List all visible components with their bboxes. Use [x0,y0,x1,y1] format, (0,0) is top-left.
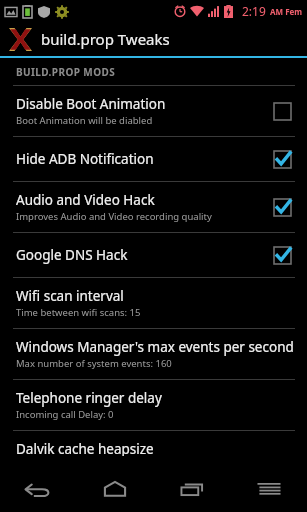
staticText: AM Fem [270,6,303,17]
staticText: Incoming call Delay: 0 [16,408,114,421]
staticText: Windows Manager's max events per second [16,338,294,356]
button[interactable]: Recent apps [153,465,230,512]
staticText: build.prop Tweaks [41,29,170,49]
button[interactable]: Checked [269,242,295,268]
button[interactable]: Hide ADB Notification [0,137,307,181]
staticText: Boot Animation will be diabled [16,114,153,127]
button[interactable]: Menu [230,465,307,512]
staticText: Hide ADB Notification [16,150,154,168]
staticText: Improves Audio and Video recording quali… [16,210,212,223]
button[interactable]: Checked [269,194,295,220]
staticText: Dalvik cache heapsize [16,440,154,456]
button[interactable]: Unchecked [269,98,295,124]
button[interactable]: Disable Boot Animation [0,86,307,136]
button[interactable]: Back [0,465,76,512]
staticText: Telephone ringer delay [16,389,162,407]
staticText: BUILD.PROP MODS [16,65,116,79]
staticText: Google DNS Hack [16,246,128,264]
button[interactable]: Home [76,465,153,512]
button[interactable]: Dalvik cache heapsize [0,431,307,465]
staticText: Disable Boot Animation [16,95,166,113]
button[interactable]: Checked [269,146,295,172]
staticText: Wifi scan interval [16,287,124,305]
staticText: Time between wifi scans: 15 [16,306,141,319]
button[interactable]: Audio and Video Hack [0,182,307,232]
button[interactable]: build.prop Tweaks [0,22,307,56]
button[interactable]: Windows Manager's max events per second [0,329,307,379]
staticText: Audio and Video Hack [16,191,155,209]
button[interactable]: Telephone ringer delay [0,380,307,430]
button[interactable]: Google DNS Hack [0,233,307,277]
staticText: 2:19 [242,3,266,19]
button[interactable]: Wifi scan interval [0,278,307,328]
staticText: Max number of system events: 160 [16,357,172,370]
